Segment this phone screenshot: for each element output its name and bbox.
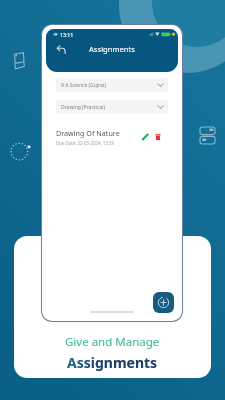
staticText: Give and Manage [65, 334, 160, 350]
staticText: Drawing (Practical) [61, 104, 105, 111]
staticText: Drawing Of Nature [56, 128, 120, 138]
staticText: Assignments [67, 353, 158, 372]
button[interactable]: Delete [154, 133, 162, 141]
button[interactable]: Drawing (Practical) [56, 100, 168, 114]
button[interactable]: Edit [141, 133, 149, 141]
staticText: Assignments [89, 44, 135, 54]
button[interactable]: Add assignment [153, 292, 174, 313]
button[interactable]: 9 A Science (Gujrat) [56, 78, 168, 92]
staticText: Due Date: 22-03-2024, 13:29 [56, 140, 115, 146]
staticText: 9 A Science (Gujrat) [61, 82, 107, 89]
staticText: 13:11 [60, 31, 74, 38]
button[interactable]: Drawing Of Nature [48, 123, 176, 151]
button[interactable]: Back [54, 44, 65, 55]
